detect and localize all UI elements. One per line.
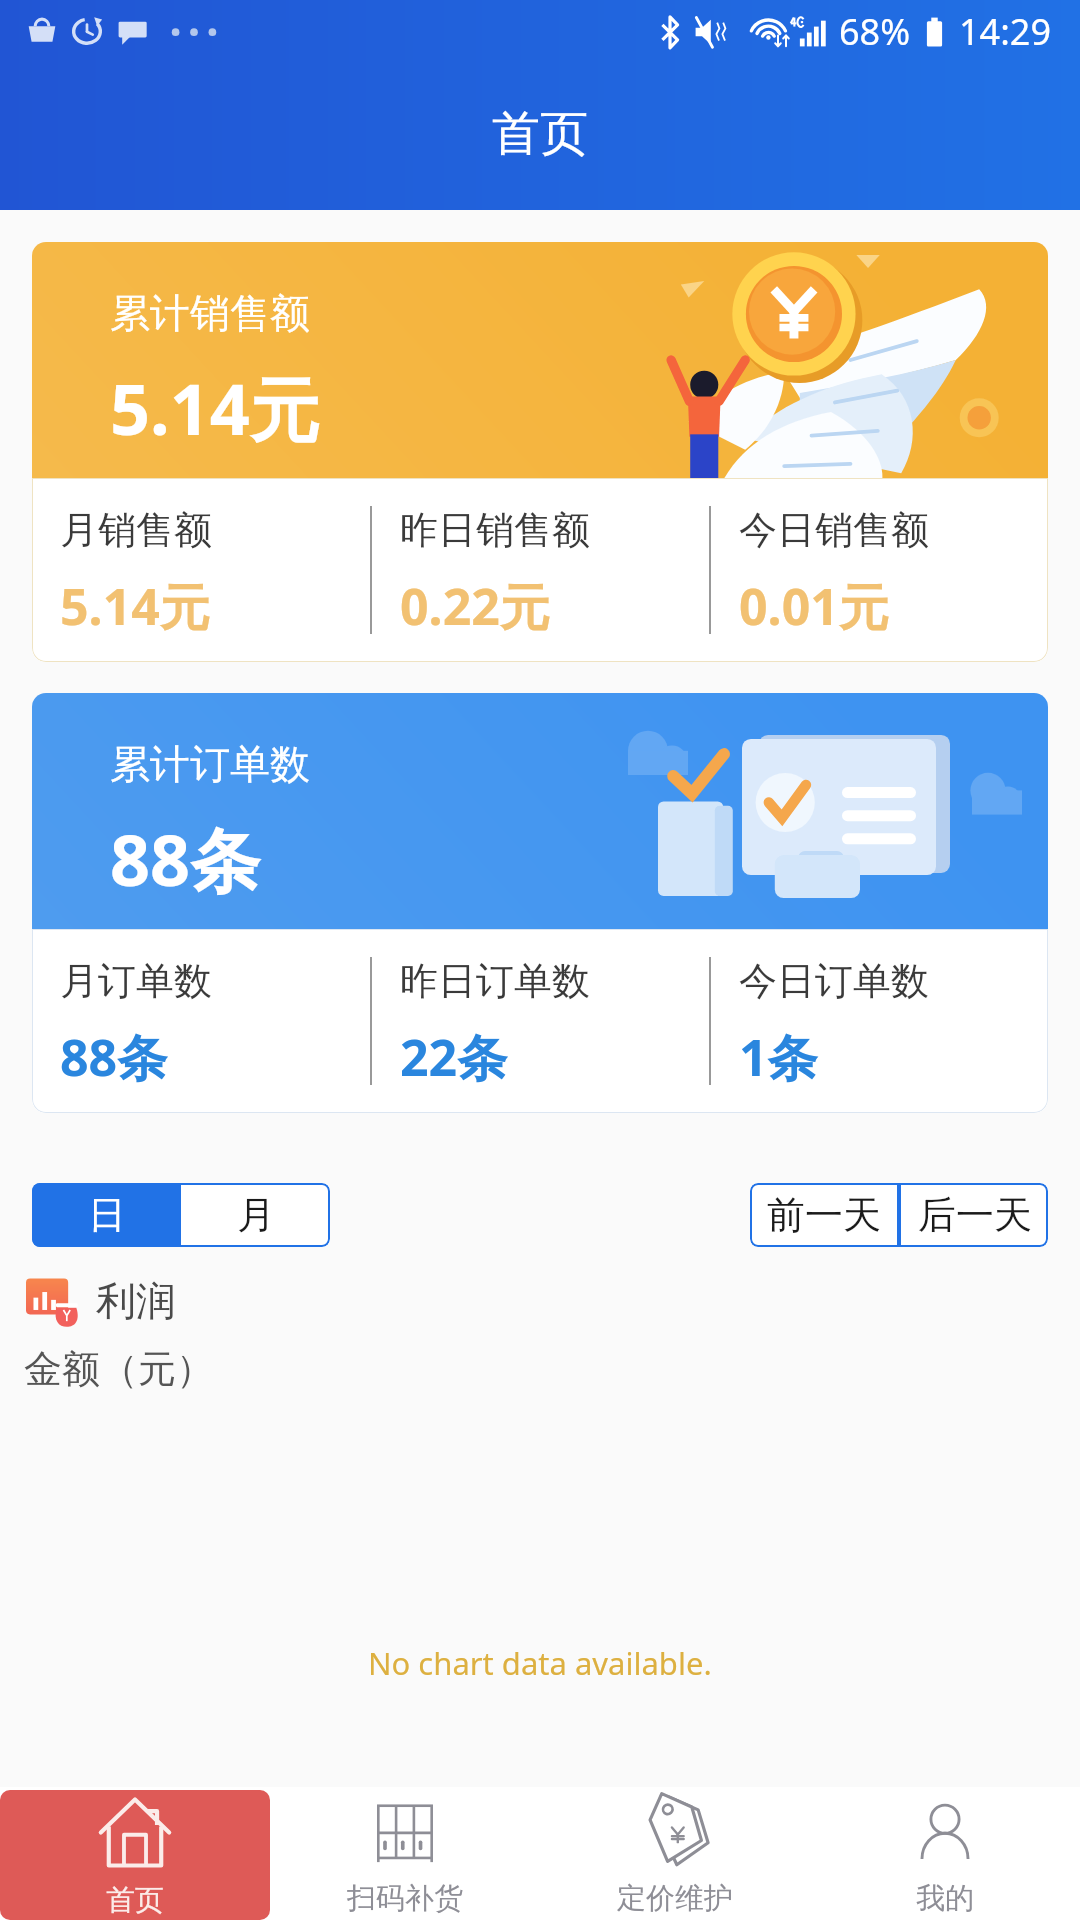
staticText: 日	[88, 1191, 126, 1239]
staticText: 累计销售额	[110, 288, 310, 338]
staticText: 88条	[60, 1023, 168, 1091]
button[interactable]: 昨日销售额	[372, 478, 709, 662]
staticText: 首页	[106, 1882, 164, 1919]
staticText: 68%	[839, 7, 911, 56]
staticText: 昨日订单数	[400, 957, 590, 1005]
staticText: 扫码补货	[347, 1880, 463, 1917]
button[interactable]: 定价维护	[540, 1787, 810, 1920]
button[interactable]: 累计订单数	[32, 693, 1048, 929]
button[interactable]: 后一天	[901, 1183, 1048, 1247]
staticText: 今日订单数	[739, 957, 929, 1005]
staticText: 前一天	[767, 1191, 881, 1239]
button[interactable]: 扫码补货	[270, 1787, 540, 1920]
button[interactable]: 月销售额	[32, 478, 370, 662]
staticText: 5.14元	[60, 572, 210, 640]
staticText: 后一天	[918, 1191, 1032, 1239]
staticText: 今日销售额	[739, 506, 929, 554]
staticText: 14:29	[959, 7, 1052, 56]
staticText: 累计订单数	[110, 739, 310, 789]
staticText: 1条	[739, 1023, 818, 1091]
button[interactable]: 利润 legend	[26, 1273, 176, 1329]
staticText: 金额（元）	[24, 1345, 214, 1393]
button[interactable]: 今日订单数	[711, 929, 1048, 1113]
button[interactable]: 日	[32, 1183, 181, 1247]
staticText: 88条	[110, 811, 261, 907]
staticText: 月	[237, 1191, 275, 1239]
staticText: 首页	[492, 104, 588, 164]
button[interactable]: 月	[181, 1183, 330, 1247]
button[interactable]: 昨日订单数	[372, 929, 709, 1113]
staticText: 利润	[96, 1276, 176, 1326]
staticText: 定价维护	[617, 1880, 733, 1917]
button[interactable]: 我的	[810, 1787, 1080, 1920]
button[interactable]: 首页	[0, 1790, 270, 1920]
staticText: 5.14元	[110, 360, 320, 456]
staticText: 0.22元	[400, 572, 550, 640]
button[interactable]: 前一天	[750, 1183, 897, 1247]
staticText: 我的	[916, 1880, 974, 1917]
button[interactable]: 月订单数	[32, 929, 370, 1113]
staticText: 0.01元	[739, 572, 889, 640]
staticText: 22条	[400, 1023, 508, 1091]
staticText: 月销售额	[60, 506, 212, 554]
button[interactable]: 累计销售额	[32, 242, 1048, 478]
staticText: 月订单数	[60, 957, 212, 1005]
staticText: 昨日销售额	[400, 506, 590, 554]
button[interactable]: 今日销售额	[711, 478, 1048, 662]
staticText: No chart data available.	[368, 1642, 712, 1684]
